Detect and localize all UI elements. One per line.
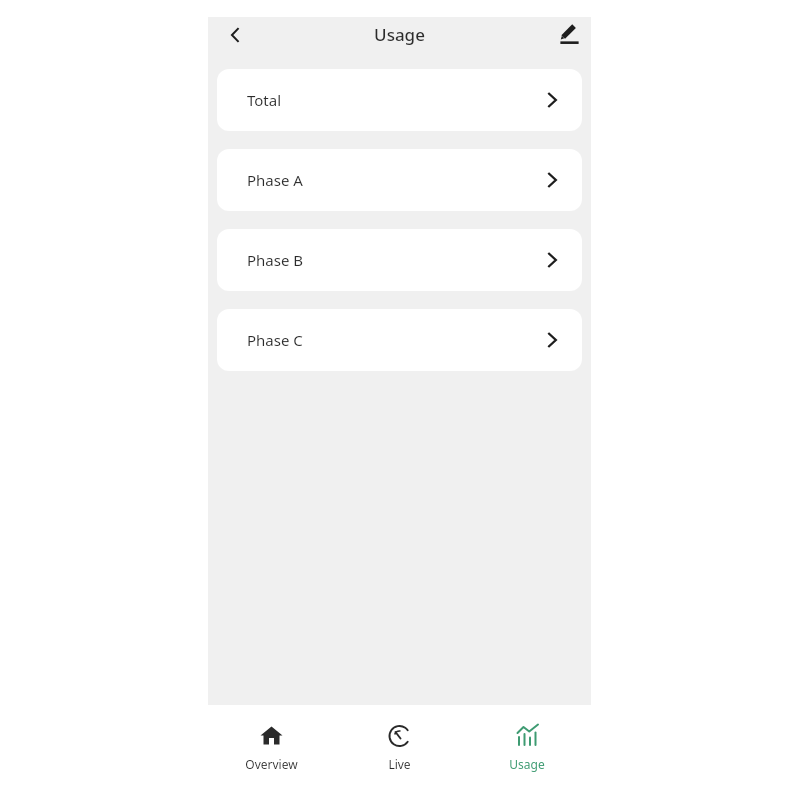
- button[interactable]: Overview: [208, 705, 335, 788]
- button[interactable]: Live: [335, 705, 463, 788]
- staticText: Usage: [509, 756, 545, 772]
- staticText: Phase C: [247, 330, 303, 350]
- staticText: Overview: [245, 756, 298, 772]
- button[interactable]: Phase B: [217, 229, 582, 291]
- staticText: Total: [247, 90, 282, 110]
- staticText: Usage: [374, 23, 425, 46]
- button[interactable]: Usage: [463, 705, 591, 788]
- button[interactable]: Back: [217, 17, 253, 52]
- button[interactable]: Total: [217, 69, 582, 131]
- staticText: Phase B: [247, 250, 304, 270]
- button[interactable]: Phase C: [217, 309, 582, 371]
- staticText: Phase A: [247, 170, 303, 190]
- staticText: Live: [388, 756, 411, 772]
- button[interactable]: Edit: [551, 17, 587, 52]
- button[interactable]: Phase A: [217, 149, 582, 211]
